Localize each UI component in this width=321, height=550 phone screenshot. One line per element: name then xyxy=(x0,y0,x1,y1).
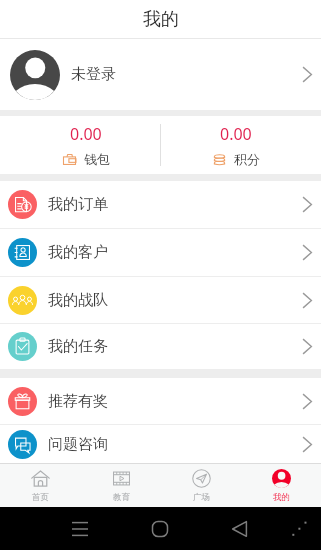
staticText: 我的任务 xyxy=(48,337,108,356)
button[interactable]: 首页 xyxy=(0,464,81,507)
staticText: 问题咨询 xyxy=(48,435,108,454)
button[interactable]: 广场 xyxy=(161,464,241,507)
staticText: 首页 xyxy=(32,492,49,503)
button[interactable]: 我的战队 xyxy=(0,277,321,323)
staticText: 钱包 xyxy=(84,151,110,167)
staticText: 我的战队 xyxy=(48,291,108,310)
button[interactable]: Home xyxy=(143,512,177,546)
staticText: 未登录 xyxy=(71,65,116,84)
staticText: 积分 xyxy=(234,151,260,167)
staticText: 我的客户 xyxy=(48,243,108,262)
button[interactable]: 教育 xyxy=(81,464,161,507)
staticText: 0.00 xyxy=(220,123,252,145)
button[interactable]: 我的 xyxy=(241,464,321,507)
button[interactable]: 推荐有奖 xyxy=(0,378,321,424)
staticText: 0.00 xyxy=(70,123,102,145)
staticText: 教育 xyxy=(113,492,130,503)
staticText: 我的 xyxy=(143,8,179,31)
button[interactable]: Menu xyxy=(63,512,97,546)
button[interactable]: 我的客户 xyxy=(0,229,321,276)
button[interactable]: 问题咨询 xyxy=(0,425,321,463)
staticText: 推荐有奖 xyxy=(48,392,108,411)
button[interactable]: 未登录 xyxy=(0,39,321,110)
button[interactable]: 我的订单 xyxy=(0,181,321,228)
button[interactable]: 0.00 xyxy=(161,116,310,174)
staticText: 我的 xyxy=(273,492,290,503)
staticText: 广场 xyxy=(193,492,210,503)
button[interactable]: 0.00 xyxy=(11,116,160,174)
button[interactable]: 我的任务 xyxy=(0,324,321,369)
button[interactable]: Back xyxy=(223,512,257,546)
staticText: 我的订单 xyxy=(48,195,108,214)
button[interactable]: More xyxy=(283,512,317,546)
